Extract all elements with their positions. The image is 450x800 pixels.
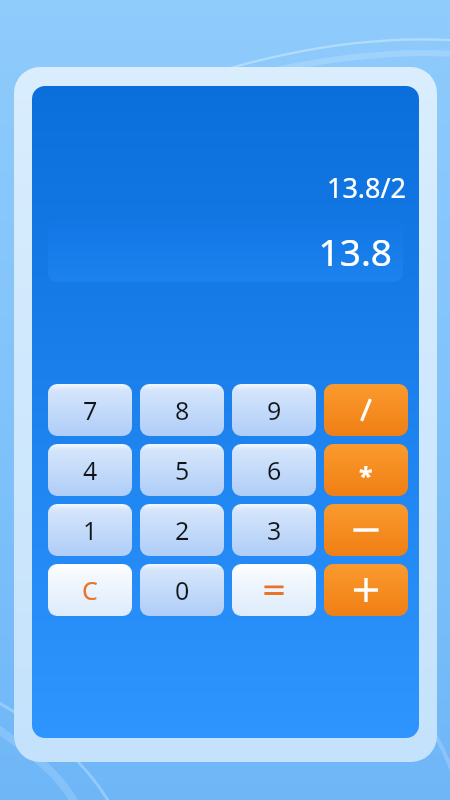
button[interactable]: 0 [140, 564, 224, 616]
button[interactable]: C [48, 564, 132, 616]
button[interactable]: 4 [48, 444, 132, 496]
staticText: 1 [83, 513, 98, 547]
staticText: 8 [175, 393, 190, 427]
button[interactable]: 2 [140, 504, 224, 556]
staticText: 5 [175, 453, 190, 487]
button[interactable]: Multiply [324, 444, 408, 496]
button[interactable]: Subtract [324, 504, 408, 556]
staticText: 13.8/2 [326, 169, 406, 206]
button[interactable]: 9 [232, 384, 316, 436]
button[interactable]: 5 [140, 444, 224, 496]
button[interactable]: 7 [48, 384, 132, 436]
staticText: 9 [267, 393, 282, 427]
button[interactable]: 8 [140, 384, 224, 436]
staticText: 2 [175, 513, 190, 547]
staticText: 4 [83, 453, 98, 487]
staticText: 7 [83, 393, 98, 427]
button[interactable]: Equals [232, 564, 316, 616]
button[interactable]: 3 [232, 504, 316, 556]
button[interactable]: 13.8 [48, 220, 403, 282]
staticText: 13.8 [318, 226, 392, 276]
staticText: 6 [267, 453, 282, 487]
staticText: 0 [175, 573, 190, 607]
button[interactable]: Divide [324, 384, 408, 436]
staticText: * [359, 458, 373, 492]
button[interactable]: 1 [48, 504, 132, 556]
button[interactable]: 6 [232, 444, 316, 496]
staticText: 3 [267, 513, 282, 547]
button[interactable]: Add [324, 564, 408, 616]
staticText: C [82, 573, 98, 607]
